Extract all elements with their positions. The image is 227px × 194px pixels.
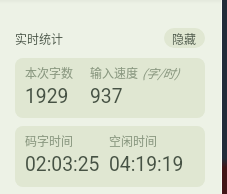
staticText: 空闲时间: [109, 132, 158, 149]
staticText: 本次字数: [25, 64, 74, 81]
button[interactable]: 本次字数: [15, 58, 205, 118]
staticText: 实时统计: [15, 30, 64, 47]
staticText: 隐藏: [172, 30, 197, 47]
staticText: 937: [90, 85, 123, 108]
staticText: 码字时间: [25, 132, 74, 149]
staticText: 输入速度: [90, 64, 139, 81]
button[interactable]: Close panel: [222, 0, 227, 194]
staticText: 02:03:25: [25, 153, 100, 176]
button[interactable]: 隐藏: [164, 28, 205, 48]
button[interactable]: 码字时间: [15, 126, 205, 187]
staticText: (字/时): [139, 64, 179, 81]
staticText: 04:19:19: [109, 153, 184, 176]
staticText: 1929: [25, 85, 69, 108]
